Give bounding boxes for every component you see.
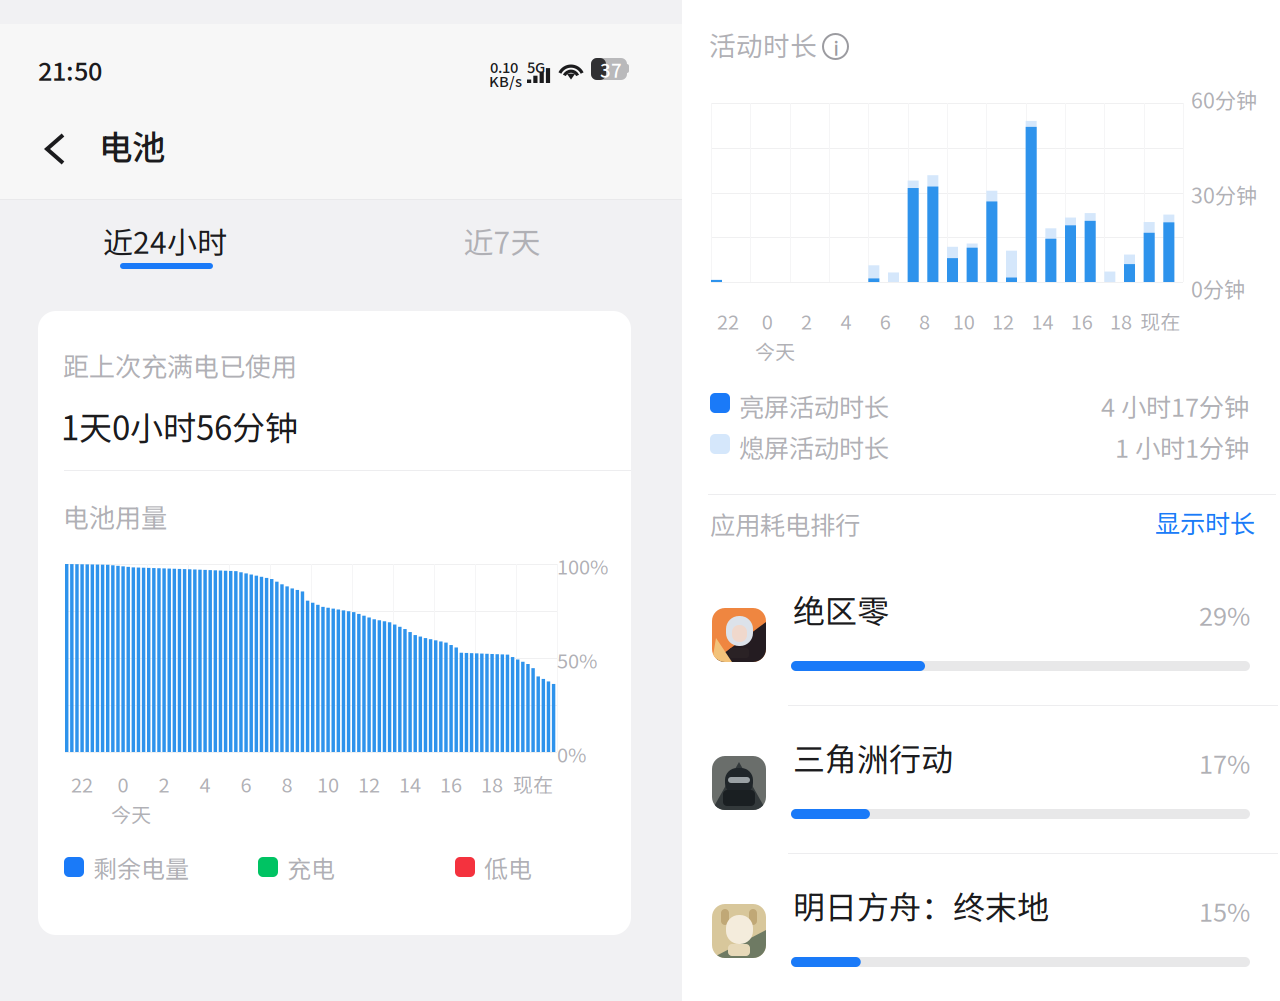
staticText: 14 (1031, 306, 1053, 335)
staticText: 22 (71, 769, 93, 798)
staticText: 12 (358, 769, 380, 798)
button[interactable] (0, 0, 341, 94)
staticText: 17% (1199, 744, 1250, 781)
staticText: 剩余电量 (93, 850, 189, 885)
staticText: 0% (557, 739, 586, 768)
staticText: 6 (880, 306, 891, 335)
staticText: 0.10 (490, 56, 518, 77)
staticText: 1天0小时56分钟 (61, 402, 298, 450)
staticText: 0 (117, 769, 128, 798)
button[interactable]: 绝区零 (682, 582, 1280, 705)
staticText: 16 (440, 769, 462, 798)
staticText: 8 (281, 769, 292, 798)
staticText: 现在 (1140, 306, 1180, 335)
staticText: 亮屏活动时长 (739, 387, 889, 424)
button[interactable] (0, 0, 341, 94)
staticText: 50% (557, 645, 597, 674)
staticText: 6 (240, 769, 251, 798)
staticText: 电池 (99, 121, 165, 169)
staticText: 显示时长 (1155, 504, 1255, 540)
staticText: 应用耗电排行 (710, 505, 860, 542)
staticText: 8 (919, 306, 930, 335)
staticText: KB/s (489, 70, 522, 91)
staticText: 4 (199, 769, 210, 798)
staticText: 12 (992, 306, 1014, 335)
staticText: 10 (317, 769, 339, 798)
button[interactable]: 显示时长 (682, 0, 815, 40)
staticText: 充电 (287, 850, 335, 885)
staticText: 21:50 (38, 51, 102, 88)
staticText: 4 小时17分钟 (1101, 387, 1249, 424)
staticText: 0 (762, 306, 773, 335)
staticText: 熄屏活动时长 (739, 428, 889, 465)
staticText: i (833, 34, 838, 61)
staticText: 37 (600, 56, 622, 83)
staticText: 30分钟 (1191, 179, 1257, 210)
staticText: 5G (527, 56, 545, 77)
staticText: 1 小时1分钟 (1115, 428, 1249, 465)
staticText: 10 (953, 306, 975, 335)
staticText: 三角洲行动 (793, 734, 953, 780)
staticText: 电池用量 (63, 497, 167, 535)
staticText: 4 (840, 306, 851, 335)
staticText: 距上次充满电已使用 (63, 346, 297, 384)
staticText: 100% (557, 551, 608, 580)
staticText: 18 (481, 769, 503, 798)
staticText: 60分钟 (1191, 84, 1257, 115)
staticText: 明日方舟：终末地 (793, 882, 1049, 928)
staticText: 2 (801, 306, 812, 335)
staticText: 绝区零 (793, 586, 889, 632)
button[interactable]: 返回 (0, 0, 70, 74)
staticText: 16 (1071, 306, 1093, 335)
staticText: 今天 (755, 336, 795, 365)
staticText: 近7天 (463, 219, 540, 262)
staticText: 18 (1110, 306, 1132, 335)
staticText: 今天 (111, 799, 151, 828)
staticText: 低电 (484, 850, 532, 885)
staticText: 14 (399, 769, 421, 798)
staticText: 现在 (513, 769, 553, 798)
staticText: 22 (717, 306, 739, 335)
button[interactable]: 明日方舟：终末地 (682, 878, 1280, 1001)
staticText: 29% (1199, 596, 1250, 633)
staticText: 15% (1199, 892, 1250, 929)
staticText: 近24小时 (103, 219, 227, 262)
staticText: 活动时长 (709, 25, 817, 64)
staticText: 0分钟 (1191, 273, 1245, 304)
staticText: 2 (158, 769, 169, 798)
button[interactable]: 三角洲行动 (682, 730, 1280, 853)
